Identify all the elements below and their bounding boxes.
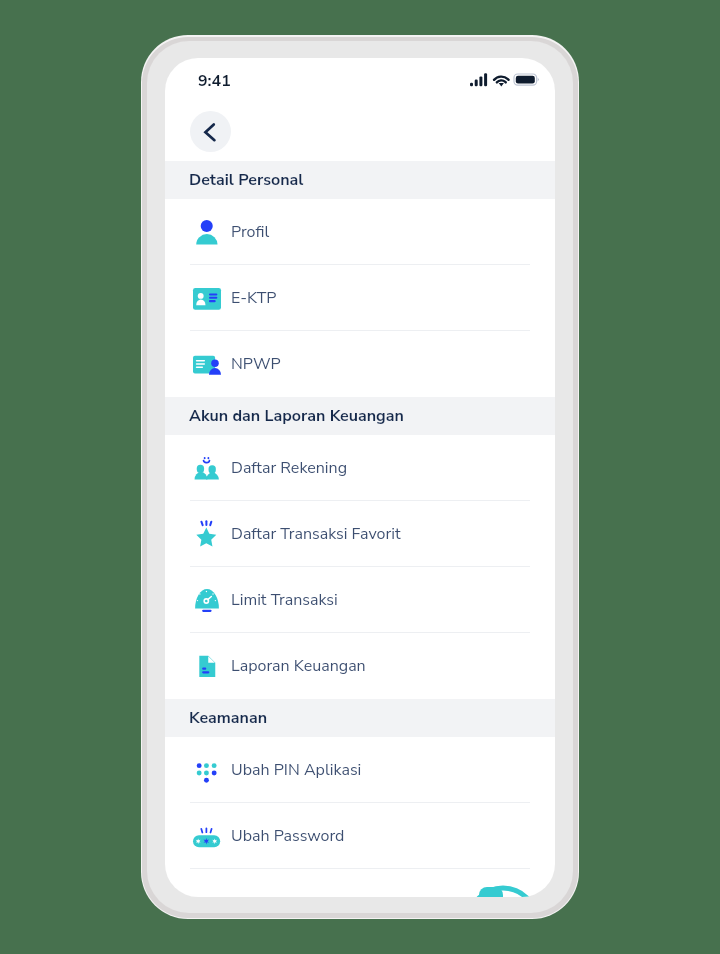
staticText: NPWP [231, 353, 281, 375]
staticText: Limit Transaksi [231, 589, 338, 611]
staticText: Ubah Password [231, 825, 345, 847]
staticText: Daftar Rekening [231, 457, 348, 479]
button[interactable]: Detail Personal [165, 161, 555, 199]
button[interactable]: Limit Transaksi [165, 567, 555, 633]
staticText: 9:41 [198, 70, 231, 92]
staticText: Daftar Transaksi Favorit [231, 523, 401, 545]
button[interactable]: Akun dan Laporan Keuangan [165, 397, 555, 435]
button[interactable]: Daftar Transaksi Favorit [165, 501, 555, 567]
button[interactable]: E-KTP [165, 265, 555, 331]
button[interactable]: Daftar Rekening [165, 435, 555, 501]
staticText: Keamanan [189, 707, 268, 729]
staticText: Laporan Keuangan [231, 655, 366, 677]
button[interactable]: NPWP [165, 331, 555, 397]
button[interactable]: Keamanan [165, 699, 555, 737]
button[interactable]: Laporan Keuangan [165, 633, 555, 699]
staticText: E-KTP [231, 287, 277, 309]
staticText: Akun dan Laporan Keuangan [189, 405, 404, 427]
button[interactable]: Ubah Password [165, 803, 555, 869]
button[interactable]: Profil [165, 199, 555, 265]
button[interactable]: Ubah PIN Aplikasi [165, 737, 555, 803]
staticText: Profil [231, 221, 270, 243]
button[interactable]: Bantuan [465, 858, 545, 897]
button[interactable]: Kembali [190, 111, 231, 152]
staticText: Detail Personal [189, 169, 304, 191]
staticText: Ubah PIN Aplikasi [231, 759, 362, 781]
